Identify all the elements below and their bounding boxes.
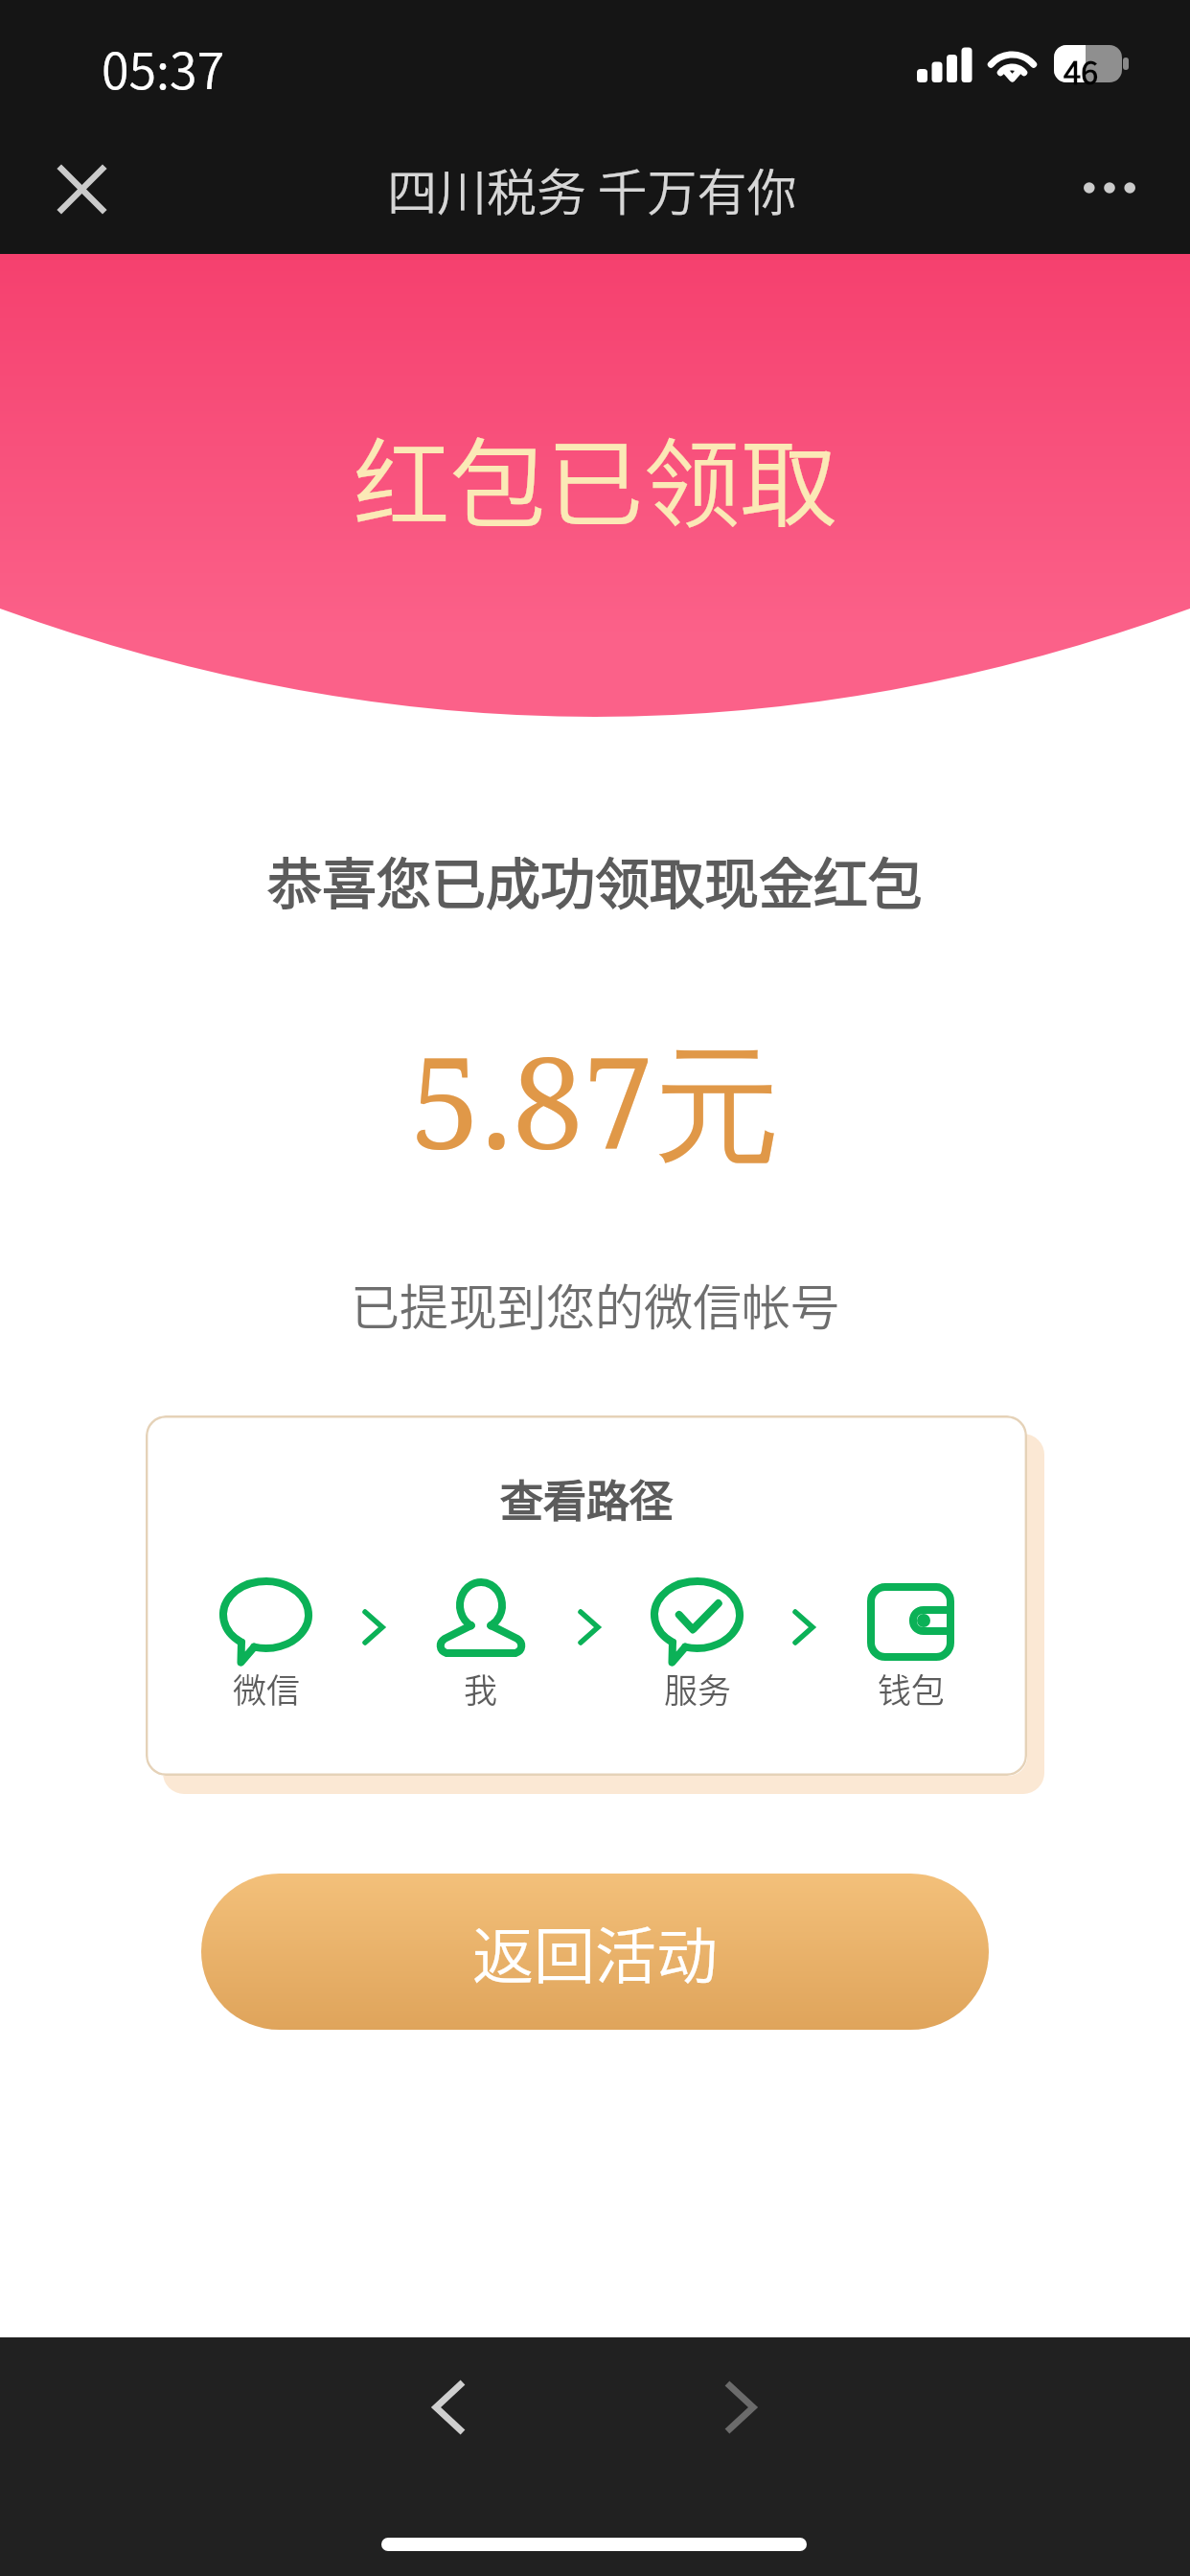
button[interactable]: More options bbox=[1057, 145, 1162, 231]
button[interactable]: Forward bbox=[682, 2350, 797, 2465]
staticText: 46 bbox=[1064, 48, 1099, 94]
staticText: 查看路径 bbox=[500, 1467, 674, 1529]
staticText: 钱包 bbox=[878, 1664, 946, 1713]
button[interactable]: 我 bbox=[414, 1572, 548, 1719]
staticText: 服务 bbox=[664, 1664, 732, 1713]
button[interactable]: Back bbox=[392, 2350, 507, 2465]
staticText: 已提现到您的微信帐号 bbox=[351, 1269, 840, 1340]
staticText: 微信 bbox=[233, 1664, 301, 1713]
button[interactable]: 微信 bbox=[199, 1572, 333, 1719]
staticText: 恭喜您已成功领取现金红包 bbox=[267, 840, 923, 920]
staticText: 我 bbox=[464, 1664, 498, 1713]
staticText: 返回活动 bbox=[472, 1907, 718, 1996]
staticText: 05:37 bbox=[102, 32, 225, 103]
staticText: 恭喜您已成功领取现金红包 bbox=[267, 840, 923, 920]
staticText: 红包已领取 bbox=[353, 407, 837, 547]
button[interactable]: 返回活动 bbox=[201, 1874, 989, 2030]
button[interactable]: 钱包 bbox=[844, 1572, 978, 1719]
staticText: 四川税务 千万有你 bbox=[387, 153, 797, 225]
button[interactable]: 服务 bbox=[630, 1572, 765, 1719]
button[interactable]: Close bbox=[38, 146, 125, 232]
staticText: 5.87元 bbox=[410, 1014, 781, 1186]
staticText: 查看路径 bbox=[500, 1467, 674, 1529]
